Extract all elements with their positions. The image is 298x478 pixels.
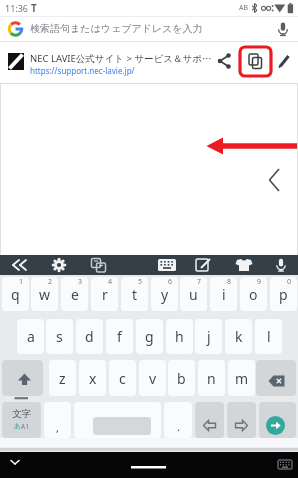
button[interactable] <box>227 402 256 438</box>
button[interactable]: b <box>168 360 195 396</box>
button[interactable]: l <box>255 319 282 354</box>
staticText: h <box>175 327 184 346</box>
staticText: n <box>207 369 216 388</box>
button[interactable] <box>88 257 110 273</box>
button[interactable]: k <box>225 319 252 354</box>
staticText: 0 <box>287 277 292 287</box>
staticText: z <box>59 369 66 388</box>
button[interactable] <box>194 257 216 273</box>
staticText: あ <box>14 422 21 430</box>
button[interactable] <box>233 257 255 273</box>
button[interactable]: u <box>180 277 207 311</box>
staticText: p <box>279 285 288 304</box>
button[interactable]: g <box>136 319 163 354</box>
button[interactable]: n <box>198 360 225 396</box>
button[interactable]: o <box>240 277 267 311</box>
staticText: , <box>56 420 59 435</box>
button[interactable] <box>256 360 296 396</box>
button[interactable]: f <box>106 319 133 354</box>
staticText: 6 <box>168 277 173 287</box>
staticText: m <box>235 369 249 388</box>
staticText: 5 <box>138 277 143 287</box>
button[interactable]: i <box>210 277 237 311</box>
staticText: k <box>235 327 243 346</box>
button[interactable]: r <box>91 277 118 311</box>
button[interactable]: j <box>195 319 222 354</box>
staticText: j <box>207 327 211 346</box>
staticText: NEC LAVIE公式サイト > サービス＆サポー… <box>30 52 214 65</box>
staticText: AB <box>239 3 249 13</box>
staticText: 3 <box>78 277 83 287</box>
staticText: v <box>149 369 157 388</box>
button[interactable] <box>259 402 296 438</box>
button[interactable] <box>6 454 26 474</box>
button[interactable]: m <box>228 360 255 396</box>
staticText: d <box>85 327 94 346</box>
staticText: 8 <box>227 277 232 287</box>
staticText: c <box>119 369 126 388</box>
button[interactable]: 文字 <box>2 402 41 438</box>
staticText: t <box>132 285 138 304</box>
staticText: f <box>117 327 122 346</box>
staticText: i <box>222 285 226 304</box>
button[interactable]: x <box>79 360 106 396</box>
button[interactable]: c <box>109 360 136 396</box>
button[interactable]: . <box>164 402 192 438</box>
button[interactable] <box>8 257 30 273</box>
staticText: 4 <box>108 277 113 287</box>
staticText: u <box>189 285 198 304</box>
button[interactable]: e <box>61 277 88 311</box>
staticText: 検索語句またはウェブアドレスを入力 <box>30 22 203 35</box>
button[interactable]: y <box>151 277 178 311</box>
button[interactable]: z <box>49 360 76 396</box>
staticText: y <box>161 285 169 304</box>
staticText: 7 <box>197 277 202 287</box>
button[interactable]: t <box>121 277 148 311</box>
staticText: https://support.nec-lavie.jp/ <box>30 65 135 76</box>
staticText: r <box>102 285 108 304</box>
button[interactable]: s <box>46 319 73 354</box>
button[interactable]: h <box>166 319 193 354</box>
staticText: x <box>89 369 97 388</box>
staticText: A1 <box>21 422 29 431</box>
staticText: e <box>71 285 79 304</box>
button[interactable]: a <box>17 319 44 354</box>
button[interactable]: p <box>270 277 297 311</box>
staticText: 9 <box>257 277 262 287</box>
button[interactable]: v <box>139 360 166 396</box>
button[interactable] <box>48 257 70 273</box>
button[interactable] <box>195 402 224 438</box>
button[interactable]: NEC LAVIE公式サイト > サービス＆サポー… <box>0 42 298 84</box>
staticText: g <box>145 327 154 346</box>
button[interactable]: , <box>44 402 71 438</box>
staticText: 11:36 <box>5 2 29 14</box>
staticText: T <box>31 1 37 15</box>
staticText: w <box>39 285 51 304</box>
staticText: b <box>177 369 186 388</box>
staticText: 文字 <box>12 408 31 420</box>
staticText: a <box>27 327 35 346</box>
staticText: l <box>267 327 271 346</box>
button[interactable] <box>2 360 43 396</box>
staticText: s <box>56 327 63 346</box>
button[interactable]: w <box>31 277 58 311</box>
button[interactable] <box>271 257 293 273</box>
button[interactable]: q <box>2 277 29 311</box>
button[interactable]: 検索語句またはウェブアドレスを入力 <box>0 16 298 42</box>
staticText: q <box>11 285 20 304</box>
staticText: 2 <box>48 277 53 287</box>
staticText: 1 <box>19 277 24 287</box>
button[interactable] <box>74 402 161 438</box>
button[interactable] <box>156 257 178 273</box>
staticText: o <box>249 285 258 304</box>
button[interactable]: d <box>76 319 103 354</box>
staticText: . <box>177 419 180 434</box>
